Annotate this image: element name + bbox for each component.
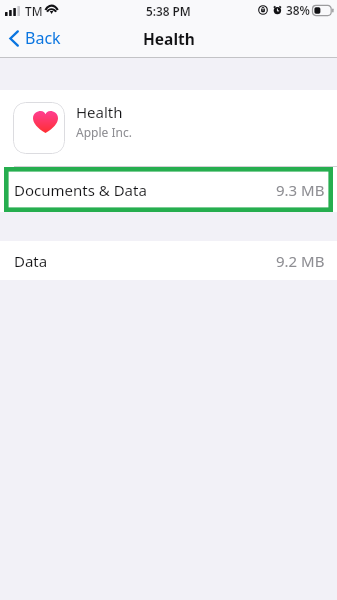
staticText: 5:38 PM [146, 3, 191, 19]
staticText: Health [76, 102, 123, 122]
staticText: Health [143, 28, 195, 49]
staticText: Apple Inc. [76, 124, 132, 140]
staticText: 9.2 MB [276, 251, 325, 271]
staticText: Documents & Data [14, 180, 147, 200]
button[interactable]: Back [0, 21, 71, 55]
button[interactable]: Documents & Data [0, 167, 337, 212]
button[interactable]: Data [0, 241, 337, 280]
staticText: Back [25, 27, 61, 49]
staticText: 9.3 MB [276, 180, 325, 200]
staticText: TM [25, 3, 43, 19]
staticText: Data [14, 251, 48, 271]
button[interactable]: Health [0, 90, 337, 166]
staticText: 38% [286, 2, 310, 18]
